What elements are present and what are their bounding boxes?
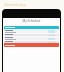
button[interactable] [4,26,59,29]
button[interactable] [4,43,59,47]
button[interactable] [4,34,59,36]
staticText: My Schedule [3,19,60,23]
button[interactable] [4,41,59,43]
button[interactable] [4,29,59,33]
staticText: Schedule App [4,2,26,7]
button[interactable] [4,37,59,40]
staticText: mobile ui concept design [4,8,28,11]
